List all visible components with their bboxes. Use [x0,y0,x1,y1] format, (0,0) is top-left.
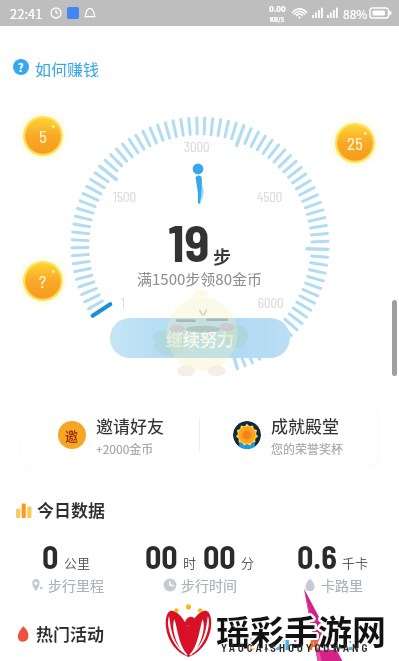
staticText: 瑶彩手游网 [215,608,385,657]
staticText: 4500 [257,189,283,205]
staticText: 瑶彩手游网 [215,604,385,653]
staticText: 00 [145,537,178,575]
staticText: 瑶彩手游网 [214,606,384,655]
staticText: 邀 [65,426,79,445]
staticText: 瑶彩手游网 [218,607,388,656]
staticText: 瑶彩手游网 [214,605,384,654]
staticText: 22:41 [10,4,43,23]
staticText: 19 [168,210,210,272]
staticText: 瑶彩手游网 [216,608,386,657]
staticText: 满1500步领80金币 [0,268,399,290]
staticText: 瑶彩手游网 [217,606,387,655]
button[interactable]: Coin 25 [329,117,381,169]
staticText: G [293,626,306,655]
staticText: ? [39,271,47,291]
staticText: 卡路里 [321,575,363,595]
staticText: 3000 [184,139,210,155]
staticText: D [259,626,273,655]
button[interactable]: 继续努力 [110,318,290,358]
staticText: 步行时间 [181,575,237,595]
staticText: M [324,626,340,655]
staticText: E [342,626,355,655]
staticText: 千卡 [342,553,369,572]
staticText: YAOCAISHOUYOUWANG [221,641,371,654]
staticText: 分 [241,553,255,572]
staticText: 25 [347,133,363,153]
staticText: 如何赚钱 [35,57,100,77]
staticText: 邀请好友 [96,413,164,438]
staticText: 瑶彩手游网 [216,605,386,654]
staticText: 88% [343,5,368,22]
staticText: 步行里程 [48,575,104,595]
staticText: 您的荣誉奖杯 [271,440,344,457]
staticText: 瑶彩手游网 [217,604,387,653]
staticText: +2000金币 [96,440,154,457]
staticText: 继续努力 [166,326,234,351]
button[interactable]: 成就殿堂 [200,404,377,466]
staticText: 成就殿堂 [271,413,339,438]
staticText: KB/S [270,15,285,24]
staticText: 瑶彩手游网 [217,605,387,654]
staticText: 瑶彩手游网 [215,605,385,654]
staticText: 热门活动 [36,621,104,646]
staticText: 公里 [64,553,91,572]
staticText: 瑶彩手游网 [216,606,386,655]
staticText: M [275,626,291,655]
staticText: ? [18,59,24,75]
button[interactable]: Coin ? [17,255,69,307]
staticText: 3 [245,626,257,655]
staticText: 瑶彩手游网 [214,607,384,656]
staticText: 瑶彩手游网 [217,607,387,656]
staticText: 1 [121,295,125,311]
staticText: 6000 [258,295,284,311]
staticText: 瑶彩手游网 [217,608,387,657]
staticText: 0 [42,537,59,575]
staticText: 0.6 [297,537,337,575]
staticText: 瑶彩手游网 [218,606,388,655]
staticText: 瑶彩手游网 [216,607,386,656]
button[interactable]: 邀 [22,404,199,466]
staticText: 时 [183,553,197,572]
staticText: 瑶彩手游网 [215,607,385,656]
button[interactable]: ? [13,57,100,77]
staticText: 今日数据 [37,497,105,522]
staticText: 5 [39,126,47,146]
staticText: 1500 [113,189,137,205]
staticText: 0.00 [269,3,286,15]
staticText: 瑶彩手游网 [218,605,388,654]
staticText: 00 [203,537,236,575]
staticText: 瑶彩手游网 [216,604,386,653]
staticText: 步 [213,243,231,269]
button[interactable]: Coin 5 [17,110,69,162]
staticText: A [308,626,322,655]
staticText: 瑶彩手游网 [215,606,385,655]
